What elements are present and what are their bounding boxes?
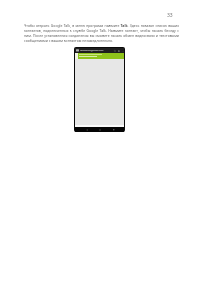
button[interactable]: Account: [75, 48, 124, 53]
other: Account: [76, 49, 79, 52]
staticText: user.name@gmail.com: [80, 49, 104, 52]
button[interactable]: [75, 53, 124, 59]
button[interactable]: Search: [113, 49, 116, 52]
staticText: 33: [167, 12, 173, 19]
button[interactable]: Back: [84, 127, 89, 132]
button[interactable]: More options: [121, 49, 124, 52]
button[interactable]: Add contact: [117, 49, 120, 52]
staticText: Чтобы открыть Google Talk, в меню програ…: [24, 23, 179, 43]
button[interactable]: Recents: [111, 127, 116, 132]
button[interactable]: Home: [97, 127, 102, 132]
